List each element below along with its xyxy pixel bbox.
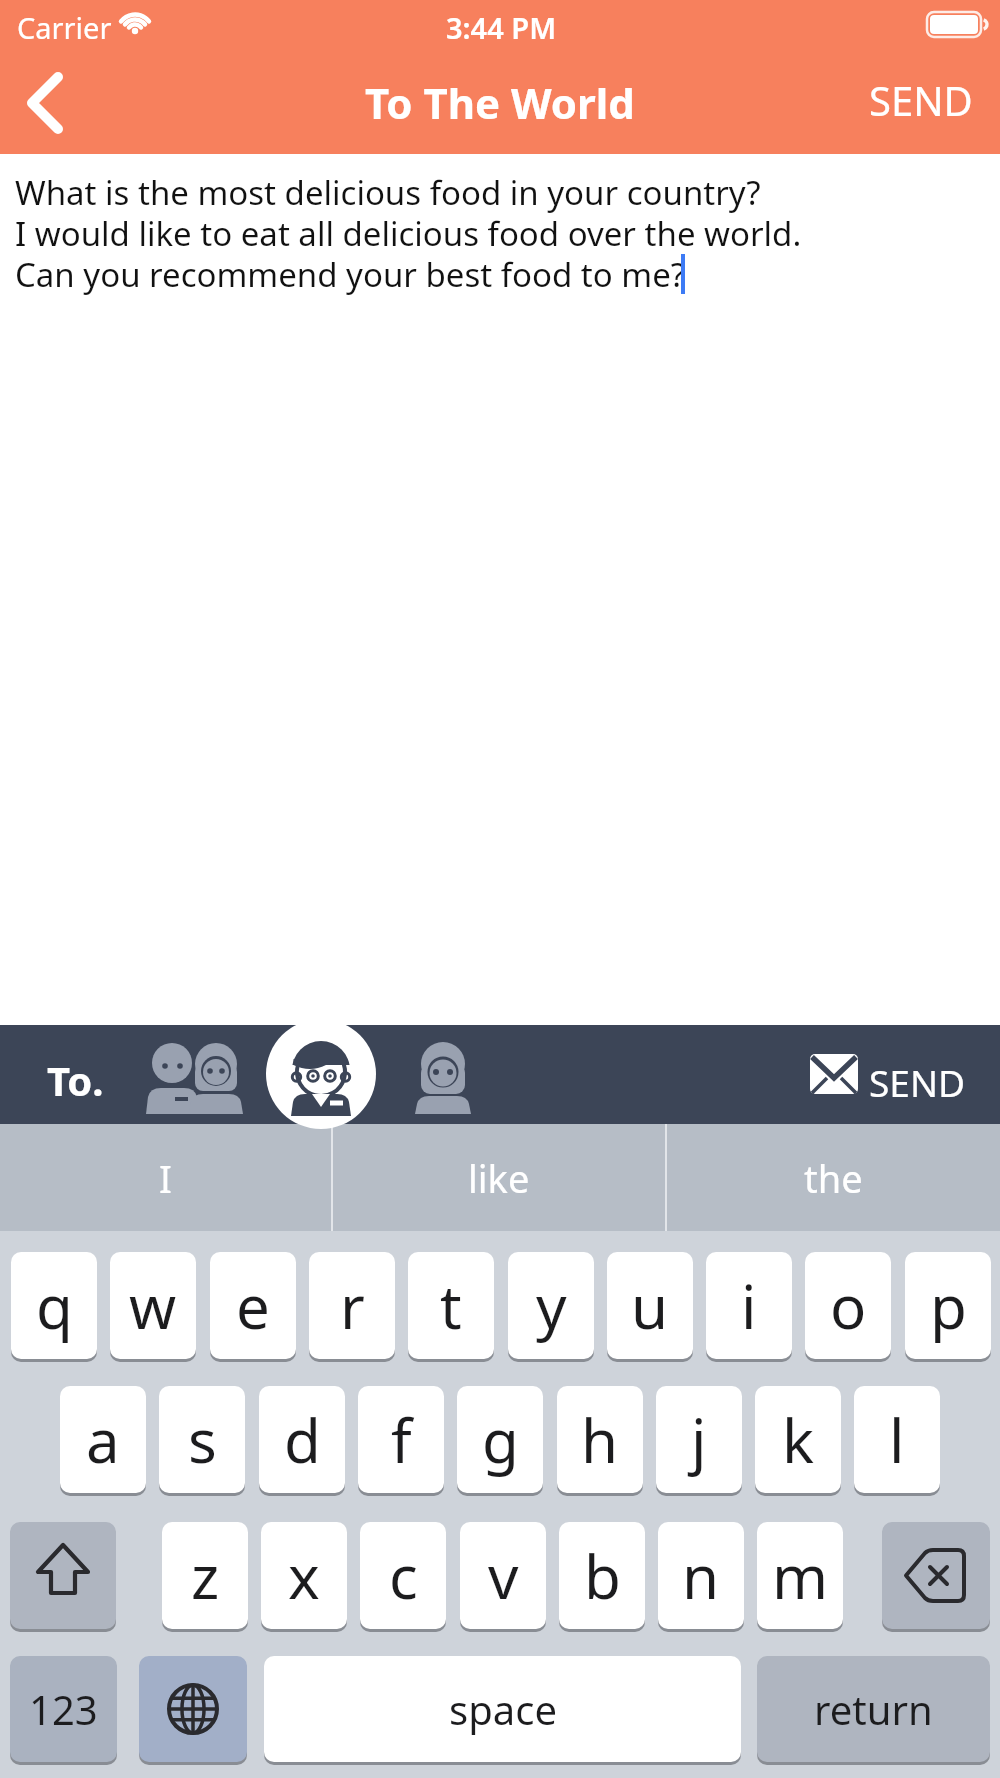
- staticText: the: [804, 1152, 863, 1204]
- button[interactable]: d: [259, 1386, 345, 1493]
- button[interactable]: o: [805, 1252, 891, 1359]
- button[interactable]: l: [854, 1386, 940, 1493]
- staticText: What is the most delicious food in your …: [15, 170, 802, 297]
- button[interactable]: v: [460, 1522, 546, 1629]
- staticText: Carrier: [17, 8, 112, 47]
- button[interactable]: w: [110, 1252, 196, 1359]
- staticText: To.: [47, 1053, 104, 1107]
- staticText: r: [340, 1265, 365, 1347]
- staticText: To The World: [365, 74, 635, 131]
- staticText: e: [236, 1265, 270, 1347]
- staticText: n: [682, 1535, 720, 1617]
- staticText: u: [631, 1265, 669, 1347]
- staticText: SEND: [869, 73, 973, 127]
- button[interactable]: f: [358, 1386, 444, 1493]
- button[interactable]: e: [210, 1252, 296, 1359]
- button[interactable]: SEND: [795, 1040, 990, 1110]
- button[interactable]: b: [559, 1522, 645, 1629]
- staticText: h: [581, 1399, 619, 1481]
- staticText: return: [814, 1682, 933, 1736]
- staticText: t: [440, 1265, 462, 1347]
- button[interactable]: g: [457, 1386, 543, 1493]
- staticText: space: [449, 1682, 557, 1736]
- button[interactable]: return: [757, 1656, 990, 1762]
- button[interactable]: [882, 1522, 990, 1629]
- button[interactable]: [10, 1522, 116, 1629]
- staticText: 3:44 PM: [446, 8, 557, 47]
- button[interactable]: z: [162, 1522, 248, 1629]
- button[interactable]: k: [755, 1386, 841, 1493]
- button[interactable]: space: [264, 1656, 741, 1762]
- staticText: q: [36, 1265, 73, 1347]
- button[interactable]: SEND: [856, 65, 986, 135]
- staticText: I: [159, 1152, 172, 1204]
- staticText: l: [889, 1399, 905, 1481]
- staticText: g: [482, 1399, 519, 1481]
- staticText: k: [782, 1399, 815, 1481]
- staticText: w: [129, 1265, 177, 1347]
- button[interactable]: [266, 1019, 376, 1129]
- button[interactable]: 123: [10, 1656, 117, 1762]
- staticText: s: [188, 1399, 217, 1481]
- staticText: m: [772, 1535, 829, 1617]
- button[interactable]: I: [0, 1124, 331, 1231]
- button[interactable]: p: [905, 1252, 991, 1359]
- staticText: c: [389, 1535, 418, 1617]
- button[interactable]: r: [309, 1252, 395, 1359]
- button[interactable]: n: [658, 1522, 744, 1629]
- button[interactable]: c: [360, 1522, 446, 1629]
- button[interactable]: the: [667, 1124, 1000, 1231]
- button[interactable]: t: [408, 1252, 494, 1359]
- button[interactable]: [140, 1045, 252, 1117]
- staticText: o: [830, 1265, 867, 1347]
- button[interactable]: q: [11, 1252, 97, 1359]
- staticText: p: [930, 1265, 967, 1347]
- staticText: y: [536, 1265, 567, 1347]
- button[interactable]: like: [333, 1124, 665, 1231]
- button[interactable]: j: [656, 1386, 742, 1493]
- button[interactable]: x: [261, 1522, 347, 1629]
- staticText: v: [488, 1535, 519, 1617]
- staticText: like: [468, 1152, 530, 1204]
- staticText: a: [86, 1399, 120, 1481]
- button[interactable]: h: [557, 1386, 643, 1493]
- button[interactable]: [10, 65, 90, 145]
- staticText: 123: [29, 1682, 98, 1736]
- button[interactable]: u: [607, 1252, 693, 1359]
- button[interactable]: m: [757, 1522, 843, 1629]
- staticText: z: [191, 1535, 220, 1617]
- staticText: i: [741, 1265, 757, 1347]
- staticText: d: [284, 1399, 321, 1481]
- staticText: b: [584, 1535, 621, 1617]
- button[interactable]: [139, 1656, 247, 1762]
- button[interactable]: a: [60, 1386, 146, 1493]
- button[interactable]: i: [706, 1252, 792, 1359]
- staticText: j: [691, 1399, 707, 1481]
- staticText: x: [288, 1535, 320, 1617]
- button[interactable]: y: [508, 1252, 594, 1359]
- staticText: f: [391, 1399, 412, 1481]
- button[interactable]: s: [159, 1386, 245, 1493]
- staticText: SEND: [869, 1057, 966, 1107]
